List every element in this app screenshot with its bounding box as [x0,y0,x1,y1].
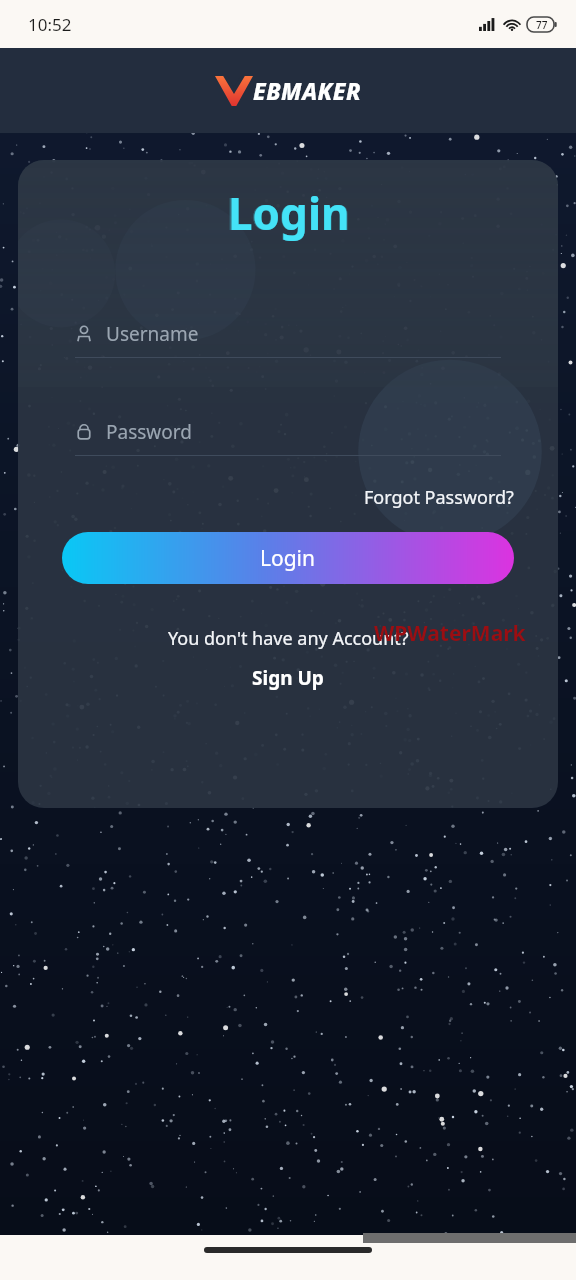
button[interactable]: Password [75,419,501,456]
button[interactable]: Login [62,532,514,584]
staticText: Username [106,321,199,347]
button[interactable]: Sign Up [244,663,332,693]
button[interactable]: Username [75,321,501,358]
staticText: You don't have any Account? [168,626,409,651]
staticText: Forgot Password? [364,485,514,510]
button[interactable]: Forgot Password? [360,479,518,516]
staticText: EBMAKER [253,75,362,106]
staticText: Login [228,183,350,243]
staticText: Sign Up [252,665,324,691]
staticText: Login [226,182,351,243]
staticText: Password [106,419,192,445]
staticText: 77 [536,18,548,32]
staticText: WPWaterMark [374,619,526,648]
staticText: Login [260,544,316,573]
staticText: 10:52 [28,13,72,36]
